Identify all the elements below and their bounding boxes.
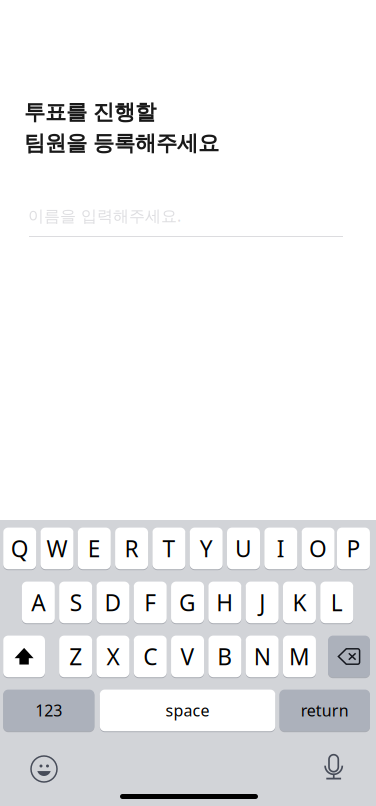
button[interactable]: J	[246, 582, 279, 623]
staticText: Z	[69, 641, 82, 671]
button[interactable]: G	[171, 582, 204, 623]
staticText: F	[144, 587, 156, 617]
staticText: 이름을 입력해주세요.	[28, 205, 181, 226]
staticText: R	[125, 533, 139, 563]
staticText: return	[301, 700, 349, 721]
staticText: space	[166, 700, 210, 721]
staticText: 123	[35, 700, 62, 721]
button[interactable]: P	[337, 528, 370, 569]
staticText: I	[277, 533, 285, 563]
button[interactable]: K	[283, 582, 316, 623]
button[interactable]: F	[134, 582, 167, 623]
button[interactable]: S	[59, 582, 92, 623]
button[interactable]	[328, 636, 370, 677]
button[interactable]: return	[279, 690, 370, 731]
button[interactable]: A	[22, 582, 55, 623]
staticText: W	[46, 533, 67, 563]
button[interactable]: Dictation	[325, 755, 347, 784]
staticText: O	[309, 533, 327, 563]
button[interactable]: space	[100, 690, 275, 731]
staticText: P	[346, 533, 360, 563]
button[interactable]: X	[96, 636, 129, 677]
staticText: U	[235, 533, 252, 563]
staticText: X	[106, 641, 119, 671]
staticText: N	[254, 641, 271, 671]
staticText: T	[162, 533, 175, 563]
button[interactable]: T	[152, 528, 185, 569]
button[interactable]: M	[283, 636, 316, 677]
staticText: K	[292, 587, 306, 617]
button[interactable]: N	[246, 636, 279, 677]
staticText: A	[31, 587, 45, 617]
button[interactable]: R	[115, 528, 148, 569]
button[interactable]: U	[227, 528, 260, 569]
staticText: C	[143, 641, 157, 671]
staticText: H	[216, 587, 233, 617]
button[interactable]: W	[40, 528, 73, 569]
staticText: G	[179, 587, 196, 617]
button[interactable]: Z	[59, 636, 92, 677]
button[interactable]: D	[96, 582, 129, 623]
button[interactable]: H	[208, 582, 241, 623]
button[interactable]: B	[208, 636, 241, 677]
staticText: B	[217, 641, 232, 671]
button[interactable]: L	[320, 582, 353, 623]
button[interactable]: Q	[3, 528, 36, 569]
button[interactable]	[3, 636, 45, 677]
staticText: S	[70, 587, 82, 617]
button[interactable]: C	[134, 636, 167, 677]
staticText: J	[259, 587, 265, 617]
button[interactable]: V	[171, 636, 204, 677]
staticText: E	[88, 533, 101, 563]
staticText: M	[289, 641, 310, 671]
staticText: V	[180, 641, 194, 671]
button[interactable]: 123	[3, 690, 94, 731]
staticText: D	[104, 587, 121, 617]
button[interactable]: Emoji keyboard	[31, 756, 57, 782]
staticText: L	[331, 587, 343, 617]
button[interactable]: E	[78, 528, 111, 569]
staticText: 투표를 진행할	[24, 99, 156, 125]
button[interactable]: I	[264, 528, 297, 569]
button[interactable]: Y	[190, 528, 223, 569]
staticText: 팀원을 등록해주세요	[24, 130, 219, 156]
button[interactable]: O	[302, 528, 335, 569]
staticText: Y	[200, 533, 213, 563]
staticText: Q	[11, 533, 29, 563]
